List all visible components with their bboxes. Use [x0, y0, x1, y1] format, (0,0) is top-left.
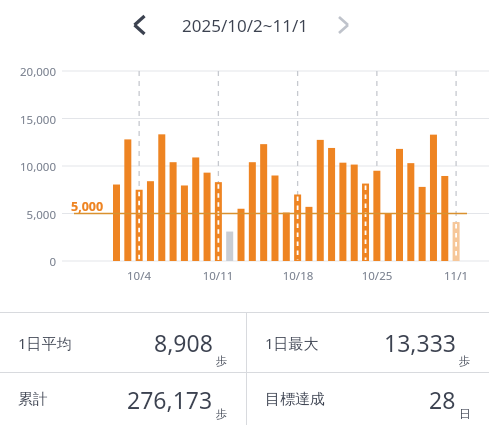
staticText: 10,000: [0, 159, 56, 175]
button[interactable]: 累計: [0, 373, 246, 425]
staticText: 歩: [459, 354, 471, 368]
staticText: 276,173: [127, 384, 213, 415]
staticText: 11/1: [436, 268, 476, 284]
staticText: 累計: [18, 390, 48, 409]
staticText: 10/18: [278, 268, 318, 284]
staticText: 1日平均: [18, 333, 72, 353]
button[interactable]: Next period: [329, 10, 359, 40]
button[interactable]: Previous period: [124, 10, 154, 40]
staticText: 歩: [216, 407, 228, 421]
staticText: 1日最大: [265, 333, 319, 353]
staticText: 5,000: [71, 198, 104, 215]
staticText: 8,908: [154, 327, 213, 358]
staticText: 10/25: [357, 268, 397, 284]
button[interactable]: 1日最大: [247, 313, 489, 372]
staticText: 2025/10/2~11/1: [182, 14, 308, 37]
staticText: 日: [459, 407, 471, 421]
staticText: 10/4: [119, 268, 159, 284]
staticText: 目標達成: [265, 390, 325, 409]
staticText: 13,333: [384, 327, 456, 358]
staticText: 20,000: [0, 64, 56, 80]
staticText: 5,000: [0, 207, 56, 223]
staticText: 歩: [216, 354, 228, 368]
staticText: 15,000: [0, 112, 56, 128]
button[interactable]: 目標達成: [247, 373, 489, 425]
staticText: 28: [429, 384, 456, 415]
staticText: 0: [0, 254, 56, 270]
staticText: 10/11: [198, 268, 238, 284]
button[interactable]: 1日平均: [0, 313, 246, 372]
